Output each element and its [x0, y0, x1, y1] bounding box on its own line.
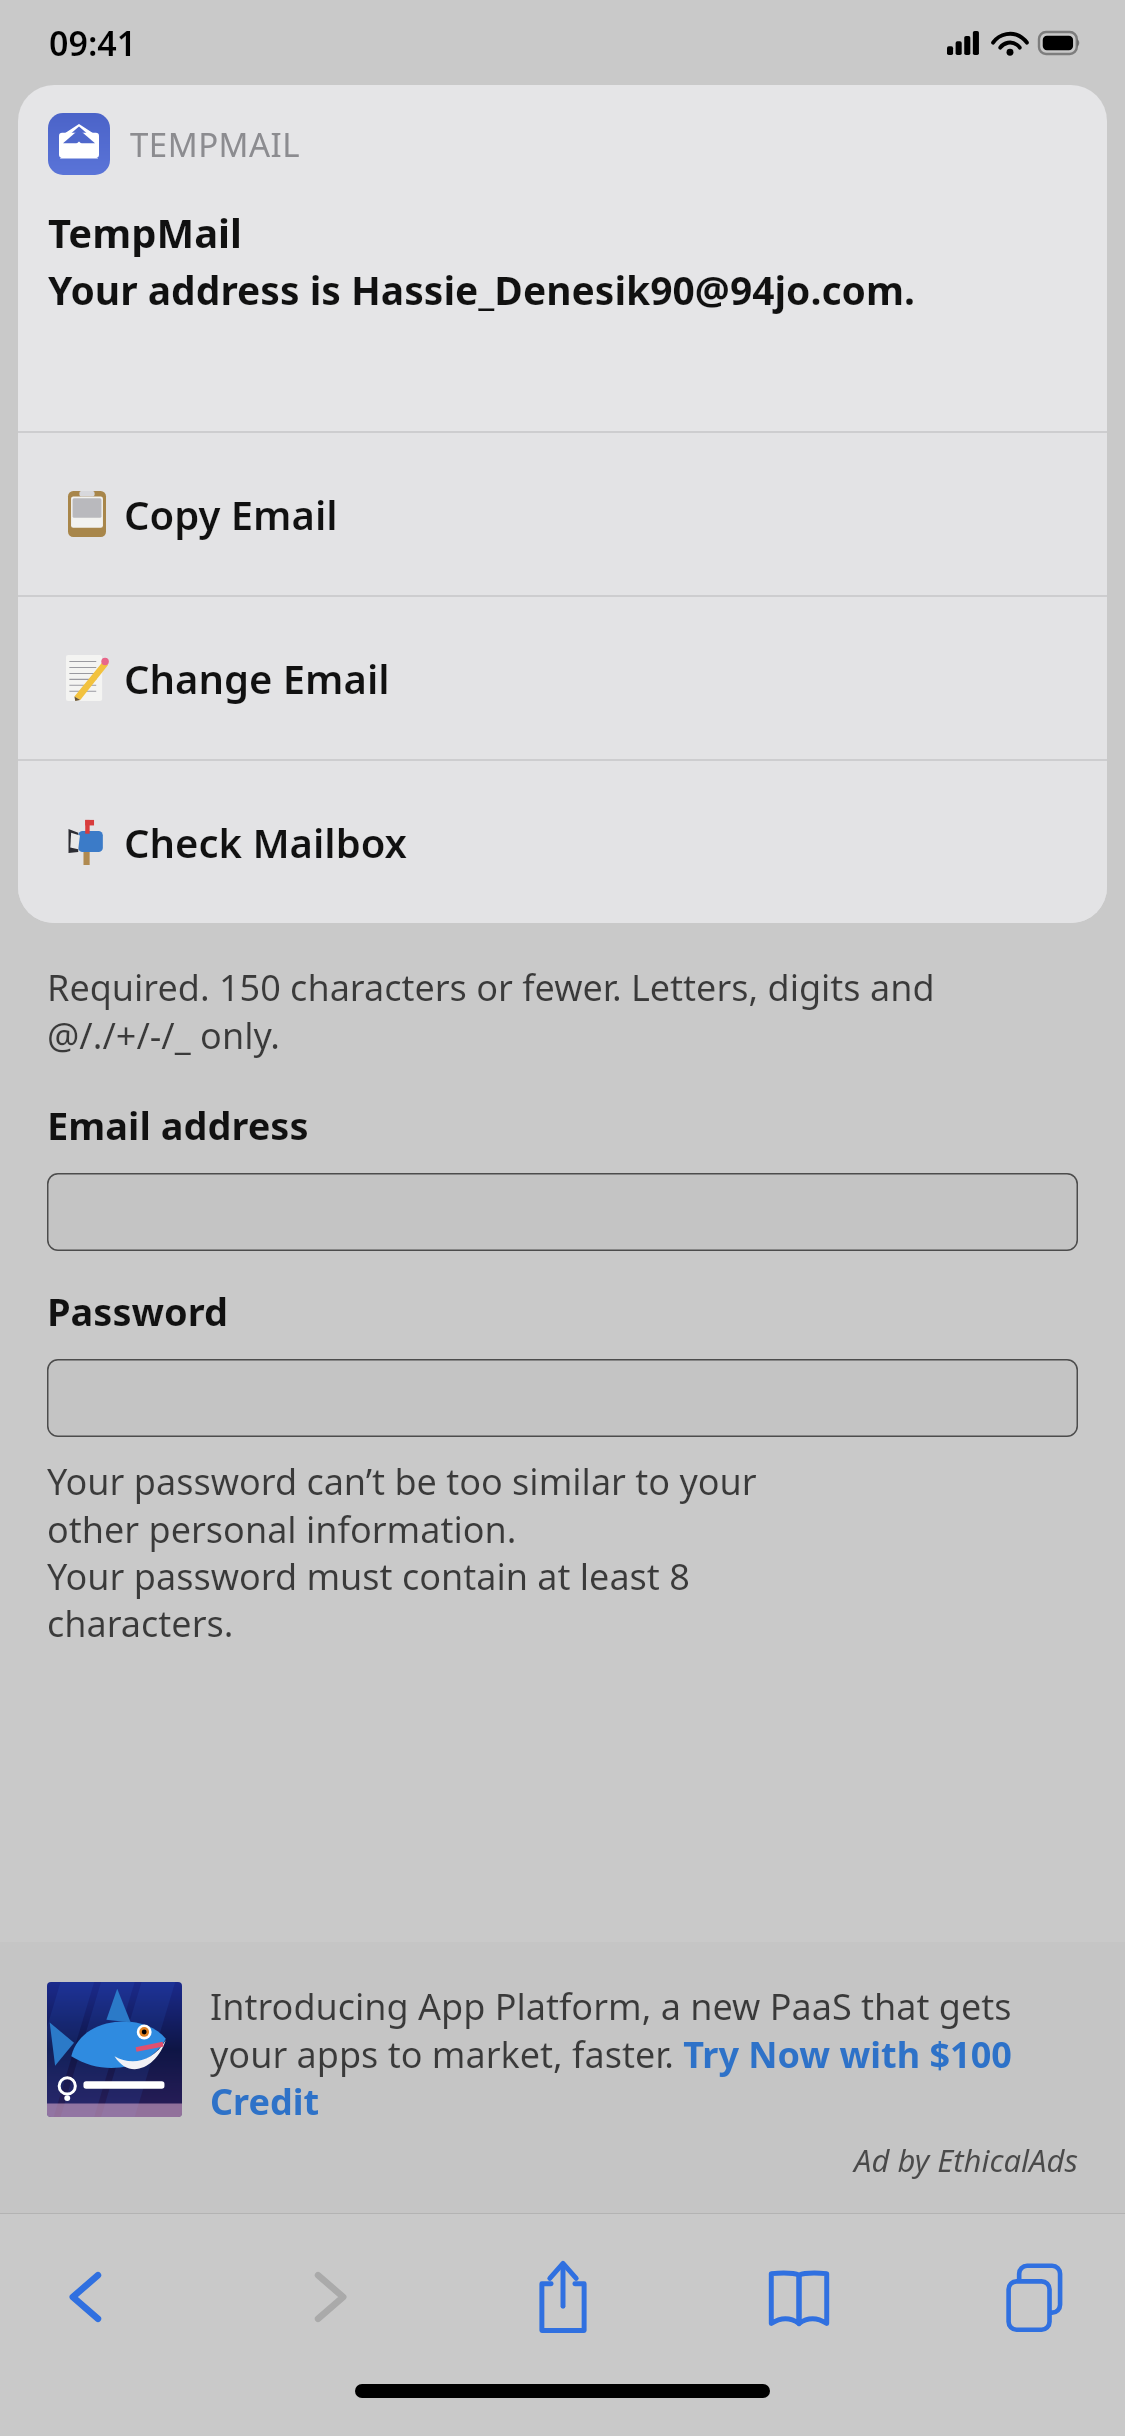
- staticText: Required. 150 characters or fewer. Lette…: [47, 963, 935, 1059]
- button[interactable]: Ad by EthicalAds: [854, 2139, 1078, 2181]
- staticText: 09:41: [49, 20, 137, 66]
- button[interactable]: Tabs: [965, 2242, 1105, 2352]
- button[interactable]: Check Mailbox: [18, 761, 1107, 923]
- staticText: Check Mailbox: [124, 815, 407, 869]
- button[interactable]: [47, 1982, 182, 2117]
- button[interactable]: [47, 1359, 1078, 1437]
- staticText: Copy Email: [124, 487, 338, 541]
- button[interactable]: [47, 1173, 1078, 1251]
- button[interactable]: Change Email: [18, 597, 1107, 759]
- button[interactable]: Bookmarks: [729, 2242, 869, 2352]
- button[interactable]: Share: [493, 2242, 633, 2352]
- staticText: Password: [47, 1285, 229, 1337]
- staticText: Your address is Hassie_Denesik90@94jo.co…: [48, 263, 915, 316]
- button[interactable]: Back: [20, 2242, 160, 2352]
- staticText: Your password can’t be too similar to yo…: [47, 1457, 757, 1647]
- staticText: Email address: [47, 1099, 309, 1151]
- staticText: Introducing App Platform, a new PaaS tha…: [210, 1982, 1078, 2125]
- button[interactable]: Forward: [256, 2242, 396, 2352]
- staticText: Change Email: [124, 651, 390, 705]
- staticText: TempMail: [48, 205, 242, 259]
- button[interactable]: Copy Email: [18, 433, 1107, 595]
- staticText: TEMPMAIL: [130, 122, 301, 167]
